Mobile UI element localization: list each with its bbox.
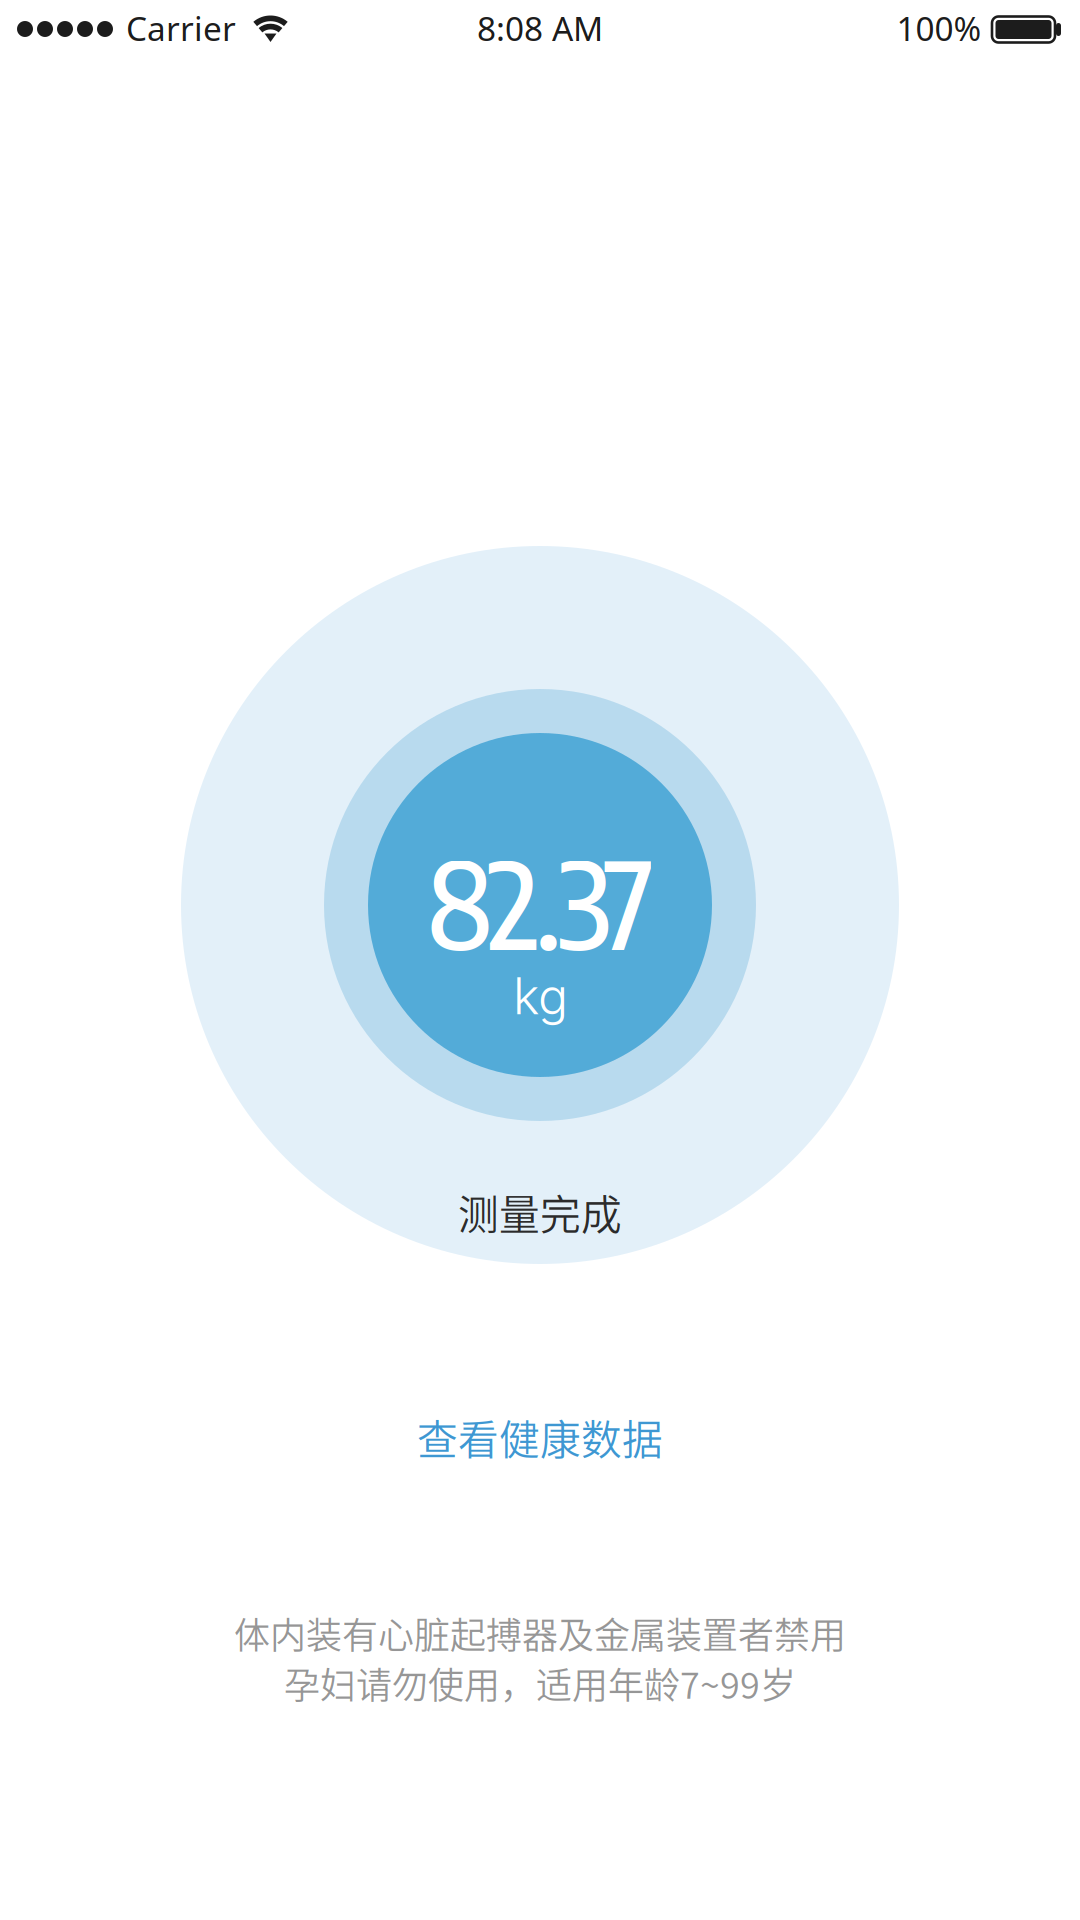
staticText: Carrier — [126, 5, 236, 51]
staticText: 查看健康数据 — [417, 1408, 663, 1466]
staticText: 8:08 AM — [477, 5, 603, 51]
staticText: 孕妇请勿使用，适用年龄7~99岁 — [284, 1657, 796, 1709]
staticText: 100% — [896, 5, 981, 51]
staticText: 体内装有心脏起搏器及金属装置者禁用 — [234, 1607, 846, 1659]
staticText: 82.37 — [427, 828, 654, 976]
staticText: kg — [513, 966, 568, 1026]
button[interactable]: 查看健康数据 — [377, 1390, 703, 1484]
staticText: 测量完成 — [458, 1183, 622, 1241]
